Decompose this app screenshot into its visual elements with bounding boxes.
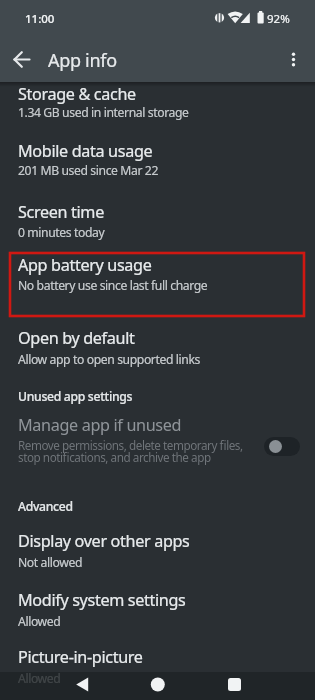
button[interactable] xyxy=(0,636,315,690)
button[interactable] xyxy=(277,43,311,77)
staticText: 11:00 xyxy=(25,11,55,27)
staticText: 0 minutes today xyxy=(18,224,105,241)
button[interactable] xyxy=(62,672,102,700)
staticText: Advanced xyxy=(18,498,73,515)
staticText: 201 MB used since Mar 22 xyxy=(18,162,158,179)
staticText: App info xyxy=(48,48,117,73)
button[interactable] xyxy=(0,244,315,297)
button[interactable] xyxy=(0,191,315,244)
staticText: App battery usage xyxy=(18,254,152,276)
staticText: No battery use since last full charge xyxy=(18,277,208,294)
staticText: Remove permissions, delete temporary fil… xyxy=(18,437,243,453)
button[interactable] xyxy=(0,579,315,634)
staticText: stop notifications, and archive the app xyxy=(18,449,211,465)
staticText: Screen time xyxy=(18,201,104,223)
button[interactable] xyxy=(264,437,300,456)
staticText: Display over other apps xyxy=(18,530,190,552)
staticText: Picture-in-picture xyxy=(18,646,143,668)
staticText: 1.34 GB used in internal storage xyxy=(18,104,189,121)
staticText: Mobile data usage xyxy=(18,140,153,162)
button[interactable] xyxy=(0,410,315,466)
staticText: Modify system settings xyxy=(18,589,186,611)
button[interactable] xyxy=(138,672,178,700)
staticText: Not allowed xyxy=(18,554,83,571)
staticText: Storage & cache xyxy=(18,83,136,105)
staticText: Allowed xyxy=(18,670,61,687)
staticText: Allow app to open supported links xyxy=(18,351,201,368)
staticText: Open by default xyxy=(18,327,135,349)
button[interactable] xyxy=(0,317,315,371)
button[interactable] xyxy=(0,520,315,574)
button[interactable] xyxy=(0,130,315,182)
staticText: Allowed xyxy=(18,613,61,630)
button[interactable] xyxy=(208,672,248,700)
button[interactable] xyxy=(6,43,40,77)
staticText: Manage app if unused xyxy=(18,414,182,436)
staticText: 92% xyxy=(267,11,290,27)
button[interactable] xyxy=(0,73,315,124)
staticText: Unused app settings xyxy=(18,388,133,405)
